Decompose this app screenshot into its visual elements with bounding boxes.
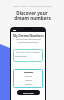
staticText: dream numbers <box>14 15 51 21</box>
button[interactable]: Generate <box>17 90 40 95</box>
staticText: My Dream Numbers <box>13 34 44 38</box>
staticText: Discover your <box>16 10 48 16</box>
staticText: Pick your lucky numbers <box>16 51 40 54</box>
button[interactable]: Pick your lucky numbers <box>13 49 43 62</box>
staticText: LOTTO LUCKY NUMBER GENERATOR <box>13 5 52 8</box>
staticText: Generate <box>23 91 34 94</box>
button[interactable] <box>13 69 43 88</box>
